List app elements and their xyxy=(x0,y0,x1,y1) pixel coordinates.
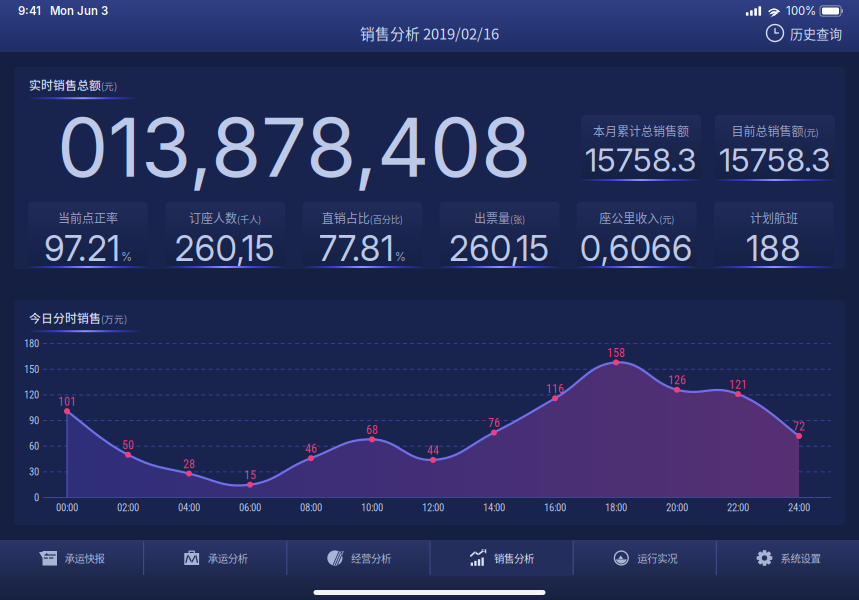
staticText: 50 xyxy=(122,438,134,452)
staticText: 系统设置 xyxy=(780,550,820,566)
staticText: 46 xyxy=(305,442,317,456)
staticText: 10:00 xyxy=(361,501,383,514)
staticText: 9:41 xyxy=(18,4,41,18)
staticText: % xyxy=(395,250,406,264)
staticText: 90 xyxy=(29,414,39,427)
staticText: 订座人数 xyxy=(189,209,237,226)
button[interactable]: 经营分析 xyxy=(286,540,429,576)
staticText: 100% xyxy=(786,4,816,18)
staticText: 00:00 xyxy=(56,501,78,514)
button[interactable]: 目前总销售额 xyxy=(715,115,835,181)
staticText: 座公里收入 xyxy=(599,209,659,226)
staticText: (万元) xyxy=(101,312,127,325)
staticText: 68 xyxy=(366,423,378,437)
button[interactable]: 出票量 xyxy=(440,202,559,268)
staticText: 77.81 xyxy=(319,227,394,269)
staticText: 0,6066 xyxy=(580,227,693,269)
staticText: 121 xyxy=(729,377,747,392)
staticText: 013,878,408 xyxy=(57,98,531,196)
staticText: 120 xyxy=(24,389,39,401)
staticText: 20:00 xyxy=(666,501,688,514)
staticText: 180 xyxy=(24,337,39,350)
staticText: 12:00 xyxy=(422,501,444,514)
button[interactable]: 承运分析 xyxy=(143,540,286,576)
staticText: (张) xyxy=(510,212,525,226)
button[interactable]: 计划航班 xyxy=(714,202,834,268)
staticText: % xyxy=(121,250,132,264)
staticText: 目前总销售额 xyxy=(731,122,803,139)
staticText: (元) xyxy=(659,212,674,226)
staticText: 260,15 xyxy=(175,227,275,269)
staticText: 直销占比 xyxy=(322,209,370,226)
button[interactable]: 销售分析 xyxy=(429,540,573,576)
staticText: 126 xyxy=(668,373,686,387)
staticText: 当前点正率 xyxy=(58,209,118,226)
staticText: 101 xyxy=(58,395,76,409)
staticText: 今日分时销售 xyxy=(29,309,101,326)
staticText: 15758.3 xyxy=(719,140,830,179)
staticText: 76 xyxy=(488,416,500,430)
staticText: 22:00 xyxy=(727,501,749,514)
staticText: 计划航班 xyxy=(750,209,798,226)
staticText: 28 xyxy=(183,457,195,471)
button[interactable]: 座公里收入 xyxy=(577,202,697,268)
button[interactable]: 运行实况 xyxy=(573,540,716,576)
staticText: 08:00 xyxy=(300,501,322,514)
staticText: 72 xyxy=(793,419,805,433)
staticText: 15758.3 xyxy=(585,140,696,179)
staticText: (千人) xyxy=(237,212,261,226)
staticText: 14:00 xyxy=(483,501,505,514)
staticText: 16:00 xyxy=(544,501,566,514)
button[interactable]: 承运快报 xyxy=(0,540,143,576)
staticText: 188 xyxy=(746,227,801,269)
button[interactable]: 当前点正率 xyxy=(28,202,148,268)
staticText: 0 xyxy=(34,491,39,504)
staticText: (百分比) xyxy=(370,212,403,226)
staticText: (元) xyxy=(803,125,818,139)
staticText: 承运分析 xyxy=(208,550,248,566)
staticText: 158 xyxy=(607,346,625,360)
staticText: 出票量 xyxy=(474,209,510,226)
staticText: 60 xyxy=(29,440,39,452)
staticText: 06:00 xyxy=(239,501,261,514)
staticText: 运行实况 xyxy=(637,550,677,566)
button[interactable]: 订座人数 xyxy=(165,202,285,268)
staticText: 销售分析 2019/02/16 xyxy=(360,22,499,44)
staticText: 97.21 xyxy=(44,227,120,269)
staticText: 本月累计总销售额 xyxy=(593,122,689,139)
staticText: (元) xyxy=(101,79,117,92)
button[interactable]: 本月累计总销售额 xyxy=(581,115,701,181)
staticText: 销售分析 xyxy=(494,550,534,566)
staticText: 24:00 xyxy=(788,501,810,514)
staticText: 承运快报 xyxy=(64,550,104,566)
staticText: 实时销售总额 xyxy=(29,76,101,93)
staticText: 02:00 xyxy=(117,501,139,514)
button[interactable]: 历史查询 xyxy=(763,21,845,44)
staticText: 经营分析 xyxy=(351,550,391,566)
button[interactable]: 系统设置 xyxy=(716,540,859,576)
staticText: 260,15 xyxy=(449,227,549,269)
staticText: 116 xyxy=(546,382,564,396)
staticText: 44 xyxy=(427,443,439,457)
staticText: Mon Jun 3 xyxy=(50,4,108,18)
staticText: 18:00 xyxy=(605,501,627,514)
staticText: 15 xyxy=(244,468,256,482)
staticText: 04:00 xyxy=(178,501,200,514)
button[interactable]: 直销占比 xyxy=(302,202,422,268)
staticText: 历史查询 xyxy=(790,23,842,42)
staticText: 30 xyxy=(29,466,39,478)
staticText: 150 xyxy=(24,363,39,375)
